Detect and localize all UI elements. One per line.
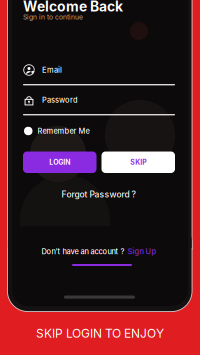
- staticText: Don't have an account ?: [41, 247, 124, 256]
- staticText: Sign in to continue: [23, 13, 83, 21]
- button[interactable]: Forgot Password ?: [23, 188, 175, 201]
- staticText: SKIP LOGIN TO ENJOY: [36, 326, 164, 341]
- staticText: Email: [42, 65, 62, 74]
- button[interactable]: Remember Me: [24, 124, 176, 138]
- staticText: Remember Me: [37, 126, 89, 135]
- button[interactable]: Don't have an account ?: [23, 246, 175, 257]
- staticText: Password: [42, 95, 78, 104]
- button[interactable]: SKIP: [101, 151, 175, 173]
- button[interactable]: LOGIN: [23, 151, 96, 173]
- staticText: Sign Up: [127, 247, 156, 256]
- staticText: Welcome Back: [23, 0, 123, 15]
- staticText: Forgot Password ?: [61, 189, 136, 200]
- staticText: LOGIN: [49, 158, 70, 166]
- staticText: SKIP: [130, 158, 146, 166]
- button[interactable]: SKIP LOGIN TO ENJOY: [0, 312, 200, 355]
